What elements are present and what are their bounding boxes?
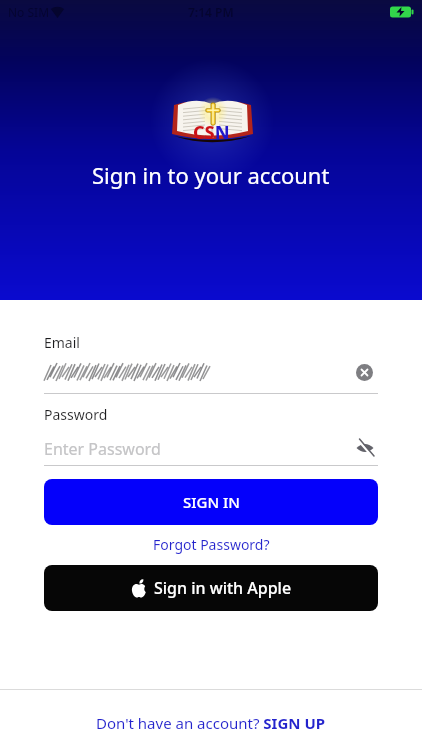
staticText: Sign in to your account	[92, 160, 330, 190]
staticText: No SIM	[8, 4, 50, 20]
button[interactable]	[356, 364, 373, 381]
button[interactable]: Don't have an account? SIGN UP	[92, 711, 330, 735]
staticText: SIGN IN	[183, 492, 240, 512]
staticText: Enter Password	[44, 438, 161, 458]
button[interactable]	[355, 439, 375, 457]
staticText: CSN	[193, 120, 230, 145]
button[interactable]: SIGN IN	[44, 479, 378, 525]
button[interactable]: Forgot Password?	[147, 533, 276, 556]
staticText: Password	[44, 405, 108, 424]
staticText: Don't have an account? SIGN UP	[96, 713, 326, 733]
staticText: Forgot Password?	[153, 535, 270, 554]
staticText: Email	[44, 333, 80, 352]
button[interactable]: Sign in with Apple	[44, 565, 378, 611]
staticText: Sign in with Apple	[154, 577, 292, 599]
staticText: 7:14 PM	[188, 4, 234, 20]
